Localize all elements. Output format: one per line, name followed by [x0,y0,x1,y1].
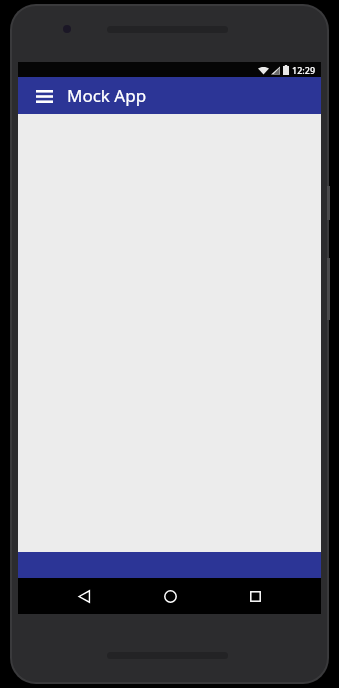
button[interactable]: Home [150,578,190,614]
staticText: Mock App [67,84,147,107]
button[interactable]: Recent apps [235,578,275,614]
button[interactable]: Back [64,578,104,614]
button[interactable]: Open navigation menu [30,82,58,110]
staticText: 12:29 [292,64,316,76]
